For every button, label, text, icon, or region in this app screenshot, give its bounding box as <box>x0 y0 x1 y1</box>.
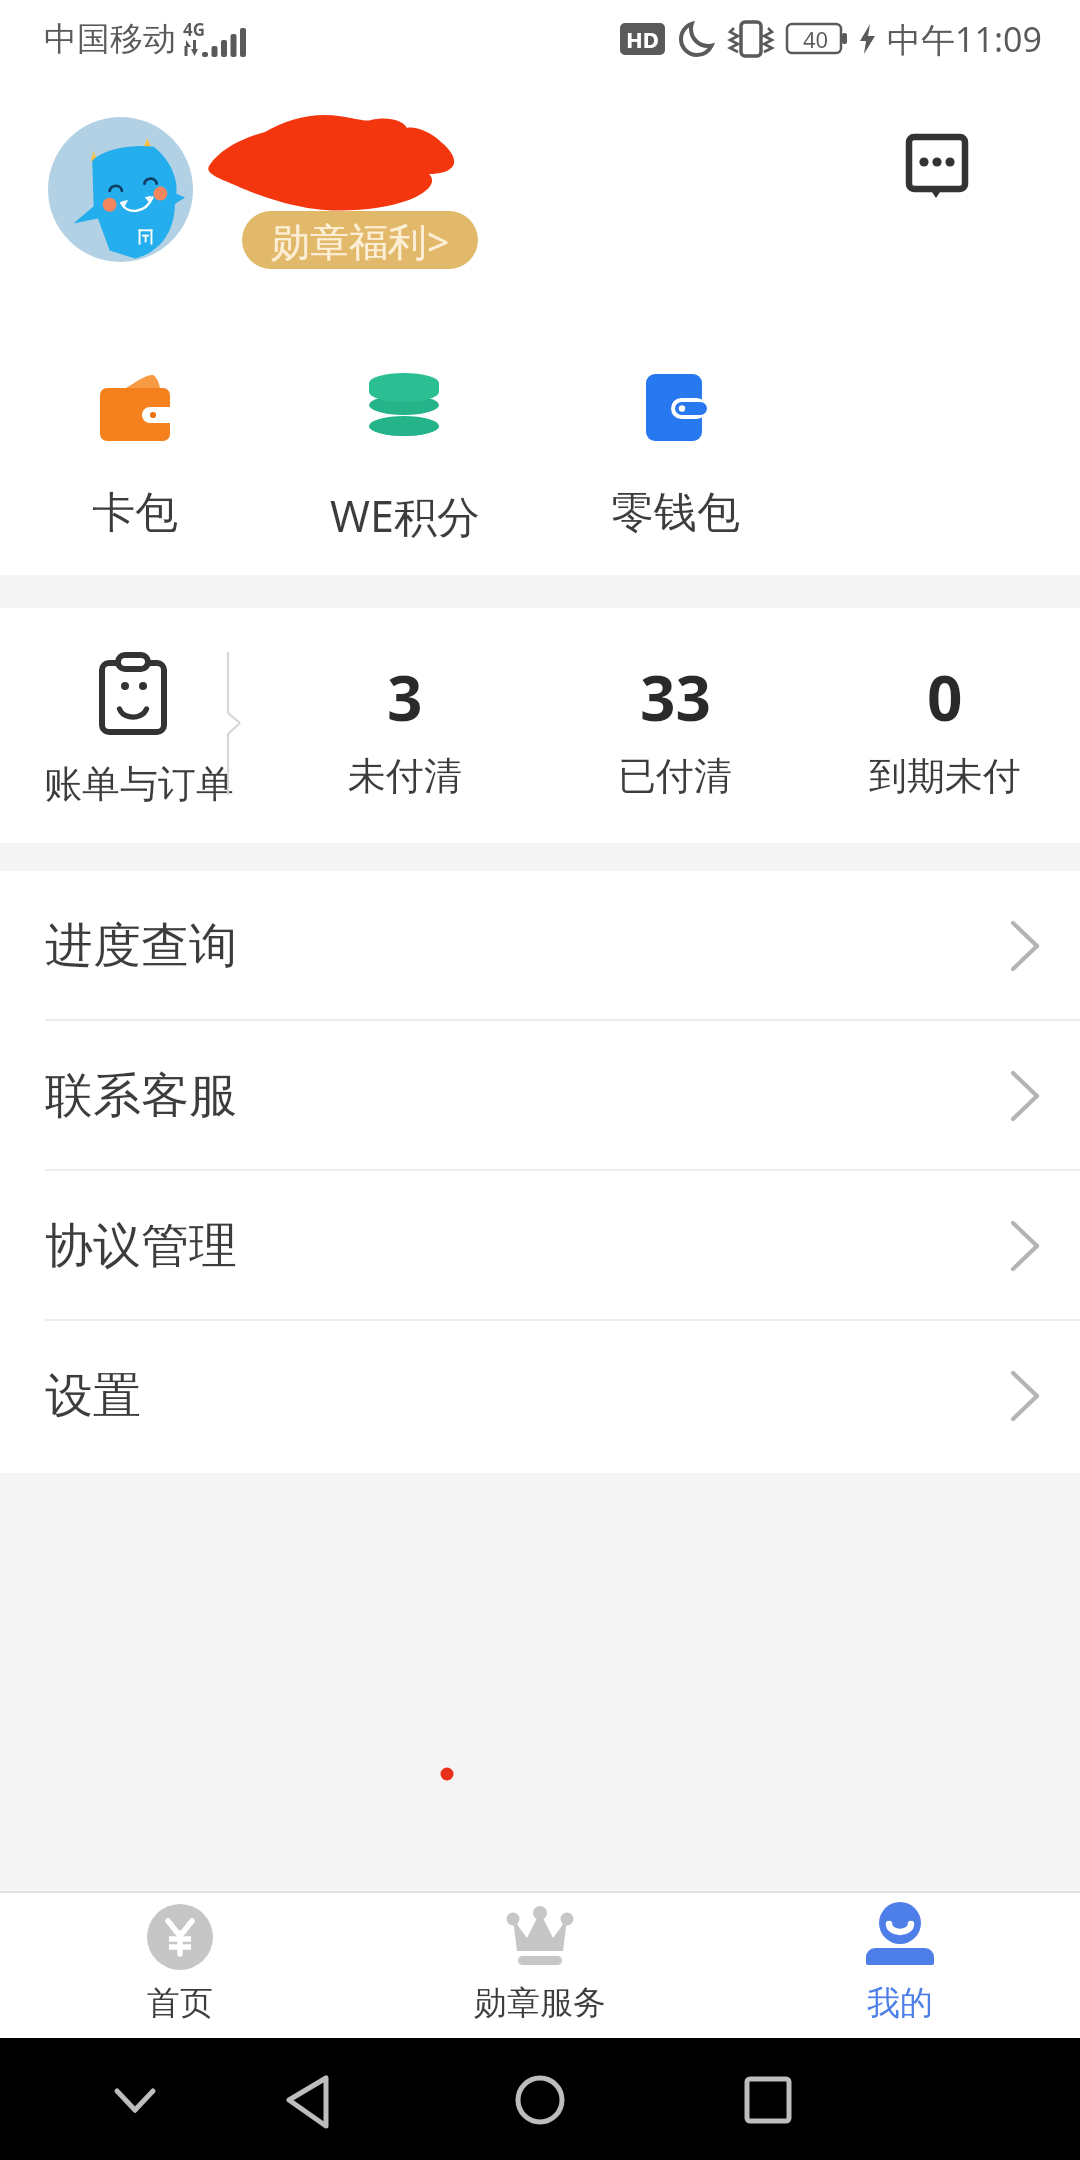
staticText: WE积分 <box>330 486 480 545</box>
staticText: 勋章福利> <box>271 214 450 267</box>
button[interactable]: 进度查询 <box>0 871 1080 1021</box>
button[interactable]: 0 <box>810 608 1080 843</box>
staticText: HD <box>626 24 659 54</box>
staticText: 首页 <box>147 1982 213 2024</box>
staticText: 3 <box>387 655 423 739</box>
staticText: 进度查询 <box>45 916 237 976</box>
button[interactable]: Home <box>498 2055 582 2139</box>
staticText: 已付清 <box>618 752 732 800</box>
button[interactable]: Profile avatar <box>48 117 193 262</box>
button[interactable]: 我的 <box>720 1891 1080 2038</box>
staticText: 4G <box>183 18 206 41</box>
staticText: 0 <box>927 655 963 739</box>
staticText: 协议管理 <box>45 1216 237 1276</box>
button[interactable]: Messages <box>900 128 972 202</box>
button[interactable]: 卡包 <box>0 310 270 575</box>
button[interactable]: WE积分 <box>270 310 540 575</box>
staticText: 联系客服 <box>45 1066 237 1126</box>
button[interactable]: 联系客服 <box>0 1021 1080 1171</box>
staticText: 中国移动 <box>44 18 176 60</box>
button[interactable]: Hide keyboard <box>93 2055 177 2139</box>
staticText: 40 <box>803 24 829 54</box>
button[interactable]: 33 <box>540 608 810 843</box>
staticText: 零钱包 <box>611 486 740 540</box>
button[interactable]: 3 <box>270 608 540 843</box>
staticText: 设置 <box>45 1366 141 1426</box>
staticText: 勋章服务 <box>474 1982 606 2024</box>
staticText: 未付清 <box>348 752 462 800</box>
staticText: 账单与订单 <box>44 760 234 808</box>
button[interactable]: Back <box>266 2055 350 2139</box>
staticText: 到期未付 <box>869 752 1021 800</box>
staticText: 中午11:09 <box>887 16 1042 62</box>
button[interactable]: Recents <box>726 2055 810 2139</box>
staticText: 33 <box>640 655 711 739</box>
button[interactable]: 协议管理 <box>0 1171 1080 1321</box>
staticText: 我的 <box>867 1982 933 2024</box>
button[interactable]: 首页 <box>0 1891 360 2038</box>
button[interactable]: 设置 <box>0 1321 1080 1471</box>
button[interactable]: 账单与订单 <box>0 608 232 843</box>
button[interactable]: 零钱包 <box>540 310 810 575</box>
staticText: 卡包 <box>92 486 178 540</box>
button[interactable]: 勋章福利> <box>242 211 478 269</box>
button[interactable]: 勋章服务 <box>360 1891 720 2038</box>
